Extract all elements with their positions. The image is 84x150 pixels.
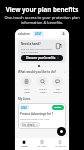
button[interactable]: Track a <box>36 76 49 94</box>
staticText: AT&T <box>35 32 42 36</box>
staticText: My devices <box>55 145 66 148</box>
staticText: claim <box>24 91 30 94</box>
button[interactable]: My devices <box>51 139 69 149</box>
staticText: and its benefits. <box>21 50 39 53</box>
staticText: Track a <box>39 88 47 91</box>
staticText: My claims <box>37 145 47 148</box>
staticText: Discover your benefits <box>26 56 56 60</box>
button[interactable]: Need a hand? <box>18 40 66 63</box>
button[interactable]: Home <box>15 139 33 149</box>
staticText: See details <box>22 123 35 126</box>
staticText: What would you like to do? <box>18 70 56 74</box>
staticText: Protect Advantage for 1 <box>20 112 54 116</box>
staticText: See the plan you purchased <box>21 47 53 50</box>
staticText: View your plan benefits <box>0 5 84 13</box>
staticText: solution <box>18 32 30 36</box>
staticText: Get <box>56 88 60 91</box>
staticText: information & benefits. <box>0 20 84 25</box>
button[interactable]: Get <box>51 76 64 94</box>
staticText: Home <box>21 145 28 148</box>
button[interactable]: Profile <box>61 31 66 36</box>
button[interactable]: File a <box>20 76 33 94</box>
staticText: File a <box>24 88 30 91</box>
button[interactable]: Chat assistant <box>57 127 66 136</box>
button[interactable]: See details <box>20 122 40 127</box>
staticText: support <box>53 91 62 94</box>
button[interactable]: My claims <box>33 139 51 149</box>
staticText: Active <box>54 106 62 109</box>
staticText: My Lines <box>18 97 31 101</box>
button[interactable]: Discover your benefits <box>21 55 63 61</box>
staticText: Samsung Galaxy S22 Ultra <box>20 117 50 120</box>
button[interactable]: AT&T <box>18 103 66 129</box>
staticText: AT&T <box>21 106 28 109</box>
staticText: Need a hand? <box>21 42 41 46</box>
staticText: One-touch access to your protection plan <box>0 15 84 20</box>
staticText: claim <box>40 91 46 94</box>
